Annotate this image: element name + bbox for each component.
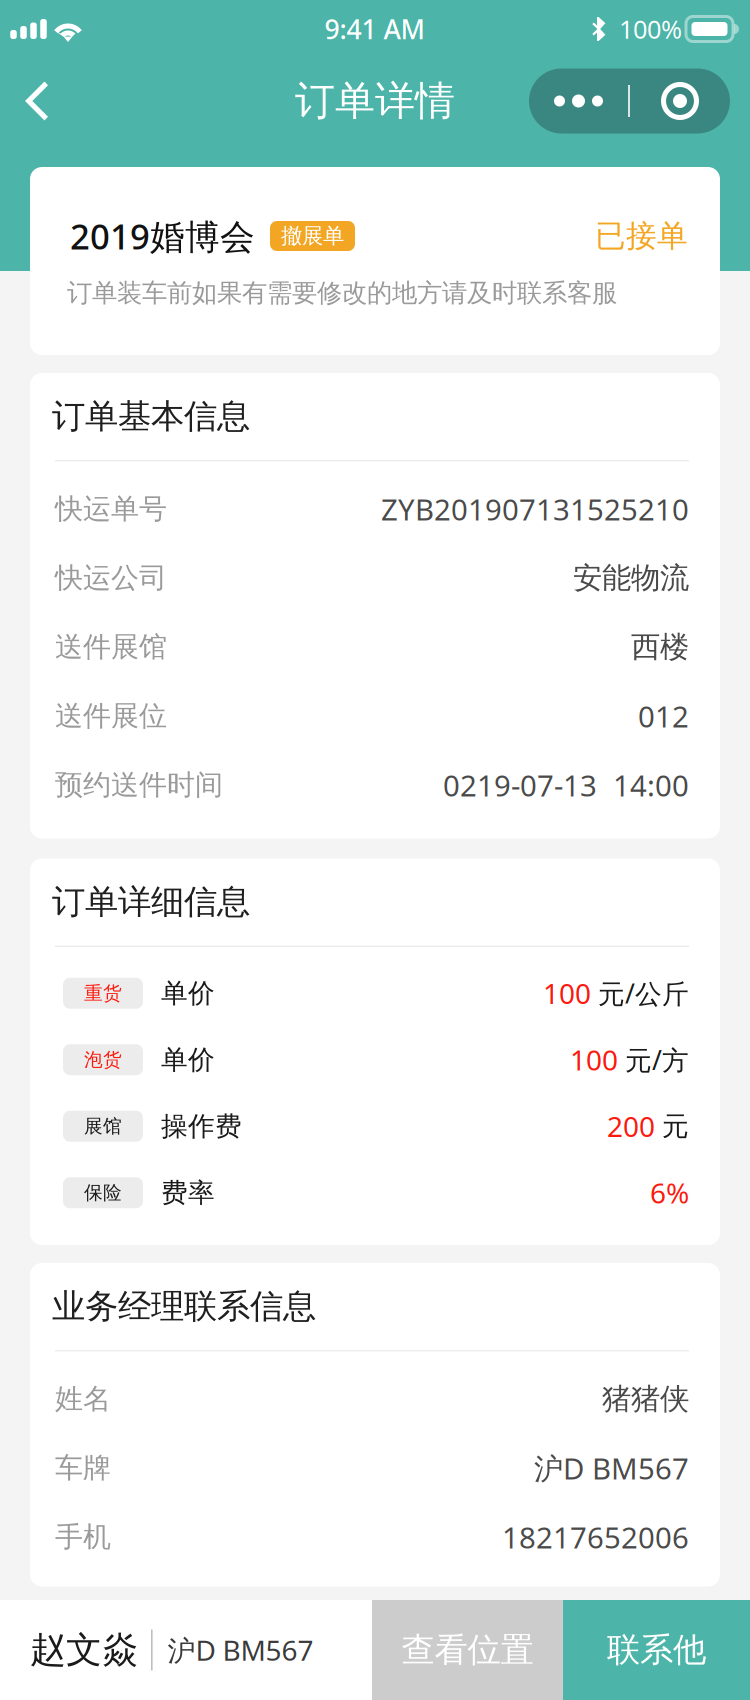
staticText: 9:41 AM xyxy=(324,11,424,47)
staticText: 姓名 xyxy=(55,1382,111,1416)
staticText: 费率 xyxy=(161,1176,215,1209)
staticText: 0219-07-13 14:00 xyxy=(443,765,689,804)
staticText: 100 xyxy=(570,1041,618,1078)
staticText: 安能物流 xyxy=(573,560,689,596)
button[interactable]: More options xyxy=(529,58,750,144)
staticText: 送件展馆 xyxy=(55,630,167,664)
staticText: 订单详情 xyxy=(295,76,455,125)
staticText: 车牌 xyxy=(55,1451,111,1485)
button[interactable]: 联系他 xyxy=(563,1600,750,1700)
staticText: 预约送件时间 xyxy=(55,768,223,802)
staticText: 100 xyxy=(543,975,591,1012)
staticText: 订单详细信息 xyxy=(52,881,250,922)
staticText: 元 xyxy=(662,1110,689,1143)
staticText: ZYB201907131525210 xyxy=(381,489,689,528)
staticText: 联系他 xyxy=(607,1629,706,1670)
staticText: 重货 xyxy=(84,982,122,1005)
staticText: 业务经理联系信息 xyxy=(52,1286,316,1327)
staticText: 元/方 xyxy=(625,1042,689,1077)
staticText: 手机 xyxy=(55,1520,111,1554)
button[interactable]: 查看位置 xyxy=(372,1600,563,1700)
staticText: 沪D BM567 xyxy=(168,1631,314,1669)
staticText: 快运单号 xyxy=(55,492,167,526)
staticText: 2019婚博会 xyxy=(70,213,255,259)
staticText: 已接单 xyxy=(595,217,688,255)
staticText: 6% xyxy=(650,1174,689,1211)
staticText: 沪D BM567 xyxy=(534,1448,689,1487)
staticText: 撤展单 xyxy=(281,223,344,249)
staticText: 订单基本信息 xyxy=(52,396,250,437)
button[interactable]: Back xyxy=(0,58,77,144)
staticText: 操作费 xyxy=(161,1110,242,1143)
staticText: 订单装车前如果有需要修改的地方请及时联系客服 xyxy=(67,277,617,308)
staticText: 保险 xyxy=(84,1181,122,1204)
staticText: 泡货 xyxy=(84,1048,122,1071)
staticText: 西楼 xyxy=(631,629,689,665)
staticText: 100% xyxy=(619,12,682,46)
staticText: 送件展位 xyxy=(55,699,167,733)
staticText: 快运公司 xyxy=(55,561,167,595)
staticText: 单价 xyxy=(161,1043,215,1076)
staticText: 200 xyxy=(607,1108,655,1145)
staticText: 012 xyxy=(638,696,689,735)
staticText: 赵文焱 xyxy=(30,1628,138,1672)
staticText: 猪猪侠 xyxy=(602,1381,689,1417)
staticText: 18217652006 xyxy=(502,1517,689,1556)
staticText: 展馆 xyxy=(84,1115,122,1138)
staticText: 单价 xyxy=(161,977,215,1010)
staticText: 元/公斤 xyxy=(598,975,689,1011)
staticText: 查看位置 xyxy=(401,1629,533,1670)
